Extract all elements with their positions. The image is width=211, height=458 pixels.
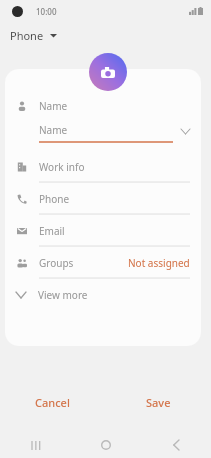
button[interactable]: Phone xyxy=(10,28,57,43)
staticText: Name xyxy=(39,123,68,137)
button[interactable]: Name xyxy=(5,95,201,117)
button[interactable]: Email xyxy=(5,215,201,247)
staticText: Email xyxy=(39,224,65,238)
staticText: Work info xyxy=(39,160,85,174)
button[interactable]: Groups xyxy=(5,247,201,279)
staticText: Name xyxy=(39,99,68,113)
staticText: Phone xyxy=(10,28,44,43)
staticText: 10:00 xyxy=(36,6,57,17)
button[interactable]: Add photo xyxy=(89,53,127,91)
staticText: View more xyxy=(38,288,88,302)
button[interactable]: Back xyxy=(141,432,211,458)
staticText: Not assigned xyxy=(128,256,190,270)
button[interactable]: Name xyxy=(5,117,201,143)
button[interactable]: Home xyxy=(71,432,141,458)
button[interactable]: Save xyxy=(105,395,211,410)
staticText: Groups xyxy=(39,256,74,270)
button[interactable]: View more xyxy=(5,279,201,311)
button[interactable]: Recents xyxy=(0,432,71,458)
button[interactable]: Phone xyxy=(5,183,201,215)
button[interactable]: Work info xyxy=(5,151,201,183)
staticText: Save xyxy=(146,395,171,410)
staticText: Cancel xyxy=(35,395,70,410)
button[interactable]: Cancel xyxy=(0,395,105,410)
staticText: Phone xyxy=(39,192,70,206)
